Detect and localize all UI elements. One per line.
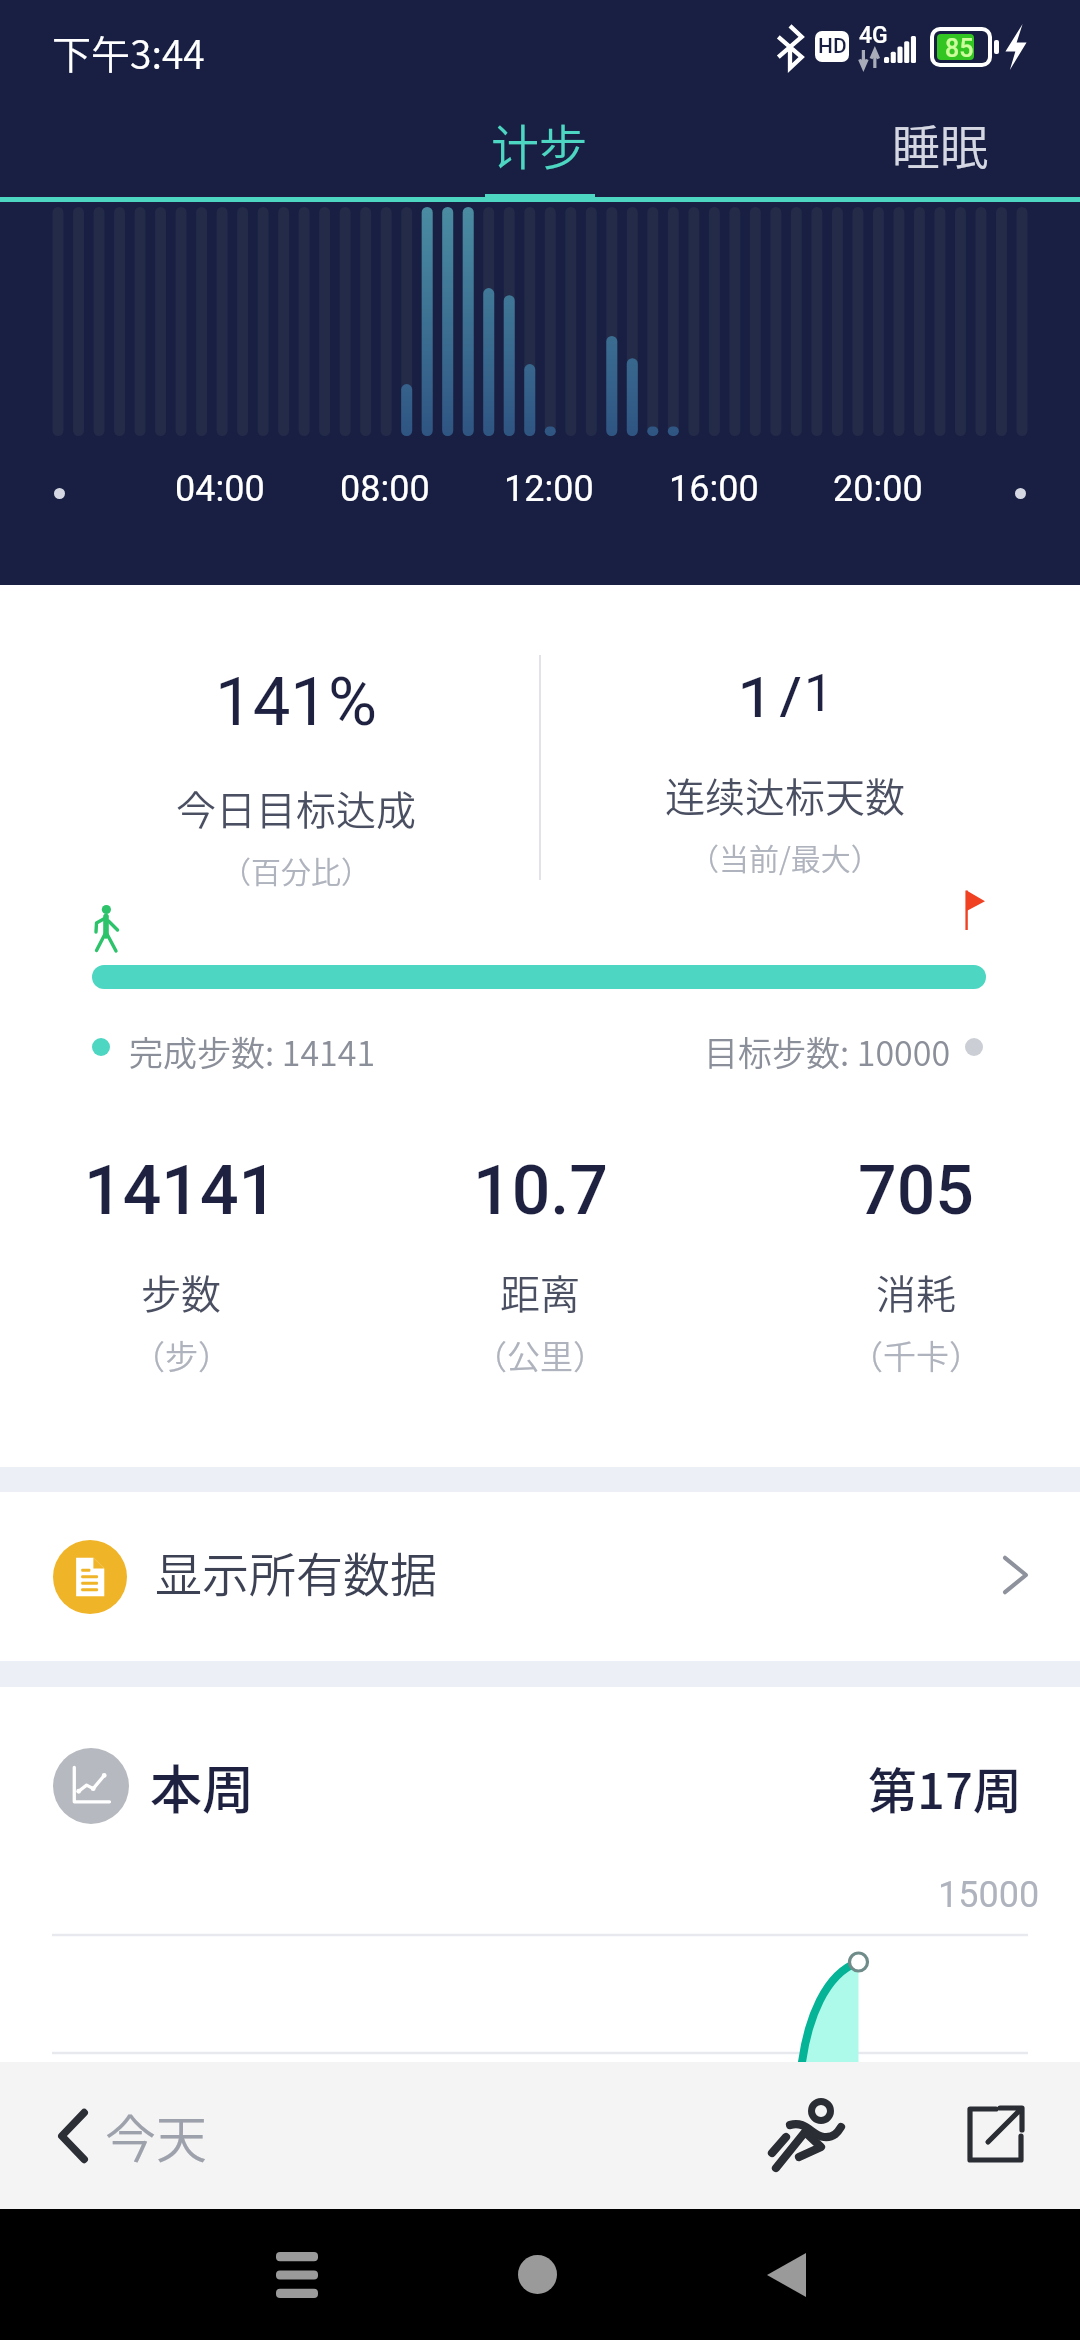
button[interactable]: Home bbox=[477, 2209, 597, 2340]
staticText: （公里） bbox=[474, 1331, 606, 1379]
button[interactable]: Back bbox=[726, 2209, 846, 2340]
staticText: 14141 bbox=[84, 1151, 278, 1231]
staticText: 4G bbox=[859, 22, 888, 49]
staticText: 12:00 bbox=[504, 468, 594, 510]
button[interactable]: 今天 bbox=[45, 2084, 222, 2188]
staticText: 显示所有数据 bbox=[155, 1537, 437, 1605]
staticText: 08:00 bbox=[340, 468, 430, 510]
button[interactable]: Share bbox=[935, 2075, 1055, 2195]
staticText: 04:00 bbox=[175, 468, 265, 510]
staticText: 本周 bbox=[150, 1749, 255, 1824]
staticText: 完成步数: 14141 bbox=[129, 1027, 376, 1076]
staticText: HD bbox=[818, 34, 847, 59]
staticText: 16:00 bbox=[669, 468, 759, 510]
staticText: 85 bbox=[945, 34, 974, 60]
staticText: 1 bbox=[804, 663, 834, 717]
button[interactable]: Recents bbox=[237, 2209, 357, 2340]
staticText: 连续达标天数 bbox=[665, 766, 905, 824]
staticText: 计步 bbox=[491, 109, 588, 179]
staticText: 20:00 bbox=[833, 468, 923, 510]
staticText: 今日目标达成 bbox=[176, 779, 416, 837]
button[interactable]: Exercise bbox=[752, 2075, 872, 2195]
staticText: 1/ bbox=[737, 663, 803, 717]
staticText: 141% bbox=[215, 663, 378, 742]
button[interactable]: 睡眠 bbox=[790, 95, 1080, 202]
staticText: 10.7 bbox=[473, 1151, 608, 1231]
staticText: 目标步数: 10000 bbox=[704, 1027, 951, 1076]
staticText: 睡眠 bbox=[892, 109, 989, 179]
staticText: 15000 bbox=[938, 1874, 1040, 1916]
staticText: 705 bbox=[858, 1151, 974, 1231]
staticText: 消耗 bbox=[876, 1263, 956, 1321]
staticText: 距离 bbox=[500, 1263, 580, 1321]
staticText: （步） bbox=[132, 1331, 231, 1379]
staticText: 第17周 bbox=[868, 1752, 1022, 1823]
staticText: 今天 bbox=[105, 2099, 208, 2173]
button[interactable]: 计步 bbox=[389, 95, 689, 202]
staticText: （百分比） bbox=[221, 848, 371, 891]
staticText: （千卡） bbox=[850, 1331, 982, 1379]
staticText: 步数 bbox=[141, 1263, 221, 1321]
staticText: （当前/最大） bbox=[689, 835, 881, 878]
button[interactable]: 显示所有数据 bbox=[0, 1492, 1080, 1661]
staticText: 下午3:44 bbox=[52, 24, 205, 80]
